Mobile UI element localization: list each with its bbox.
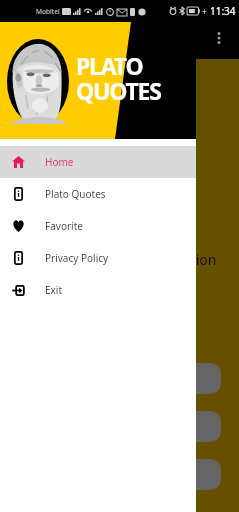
staticText: Exit: [45, 283, 63, 297]
staticText: Inspiration: [145, 250, 217, 269]
button[interactable]: More options: [204, 23, 234, 53]
button[interactable]: Favorite: [0, 210, 196, 242]
button[interactable]: Plato Quotes: [0, 178, 196, 210]
staticText: 11:34: [210, 4, 236, 18]
staticText: Privacy Policy: [45, 251, 109, 265]
staticText: Mobitel: [36, 7, 60, 16]
staticText: Favorite: [45, 219, 83, 233]
button[interactable]: Home: [0, 146, 196, 178]
button[interactable]: Exit: [0, 274, 196, 306]
staticText: Plato Quotes: [45, 187, 106, 201]
button[interactable]: Privacy Policy: [0, 242, 196, 274]
staticText: Home: [45, 155, 74, 169]
staticText: +: [202, 6, 207, 17]
staticText: PLATO: [76, 50, 143, 81]
staticText: QUOTES: [76, 75, 161, 106]
